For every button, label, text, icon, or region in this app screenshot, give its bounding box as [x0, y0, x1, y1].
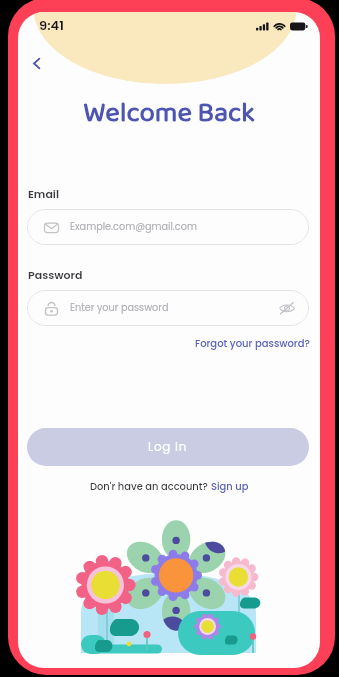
staticText: Example.com@gmail.com: [70, 220, 197, 234]
button[interactable]: Sign up: [211, 480, 249, 494]
staticText: Password: [28, 267, 83, 282]
button[interactable]: Example.com@gmail.com: [27, 209, 309, 245]
button[interactable]: Enter your password: [27, 290, 309, 326]
button[interactable]: Back: [25, 52, 47, 74]
staticText: 9:41: [39, 16, 64, 34]
button[interactable]: Forgot your password?: [185, 332, 320, 354]
staticText: Enter your password: [70, 301, 169, 315]
staticText: Welcome Back: [18, 91, 320, 136]
staticText: Log in: [148, 438, 188, 455]
staticText: Email: [28, 186, 59, 201]
button[interactable]: Log in: [27, 428, 309, 466]
button[interactable]: Show password: [278, 299, 296, 317]
staticText: Don'r have an account?: [90, 480, 211, 494]
staticText: Forgot your password?: [195, 336, 310, 350]
